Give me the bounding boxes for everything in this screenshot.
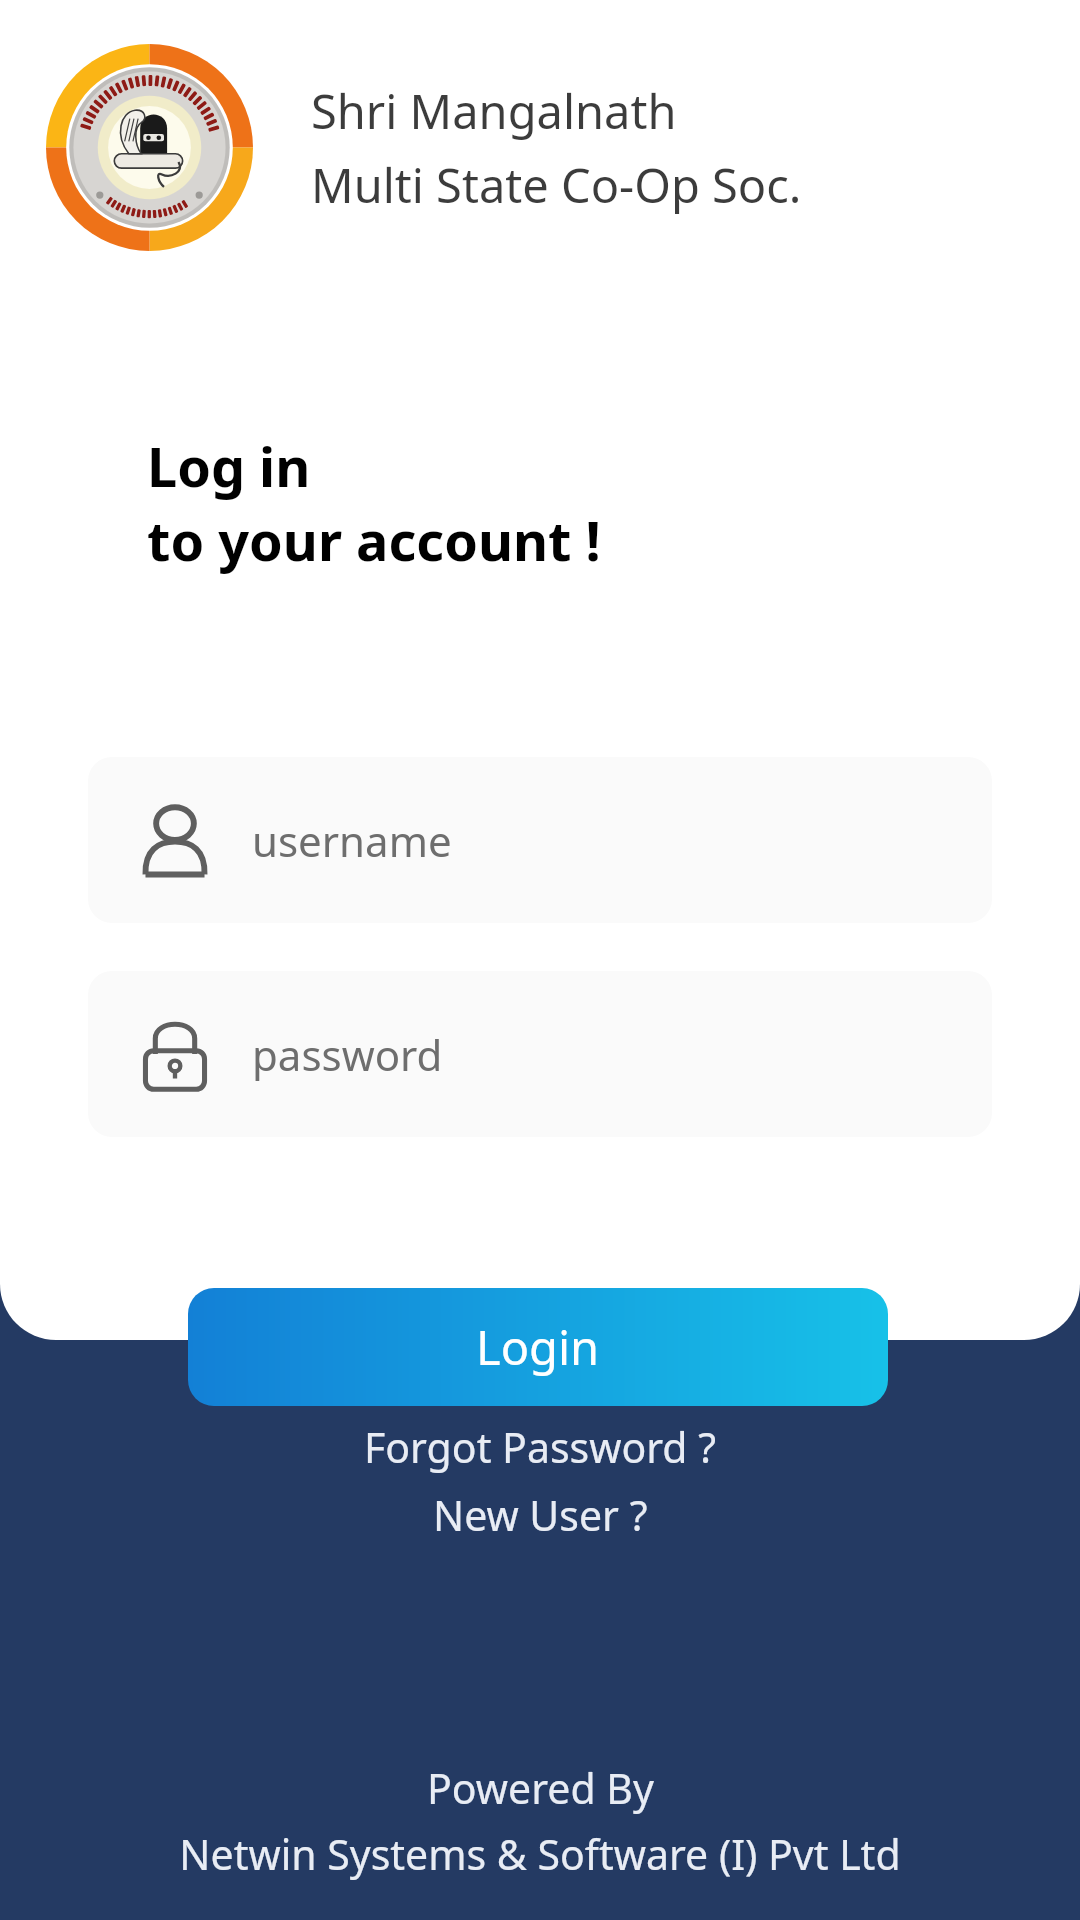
staticText: Forgot Password ? [364, 1419, 716, 1475]
staticText: Log in [147, 429, 311, 503]
staticText: to your account ! [147, 503, 601, 577]
button[interactable]: Username [88, 757, 992, 923]
staticText: password [252, 1026, 443, 1083]
other: Username [134, 799, 216, 881]
staticText: Multi State Co-Op Soc. [311, 153, 802, 217]
staticText: username [252, 812, 452, 869]
staticText: Shri Mangalnath [311, 79, 677, 143]
button[interactable]: Password [88, 971, 992, 1137]
button[interactable]: Login [188, 1288, 888, 1406]
staticText: Powered By [427, 1760, 654, 1816]
button[interactable]: Forgot Password ? [348, 1415, 732, 1479]
staticText: New User ? [433, 1487, 648, 1543]
staticText: Login [476, 1315, 600, 1379]
other: Password [134, 1013, 216, 1095]
staticText: Netwin Systems & Software (I) Pvt Ltd [179, 1826, 901, 1882]
button[interactable]: New User ? [417, 1483, 664, 1547]
